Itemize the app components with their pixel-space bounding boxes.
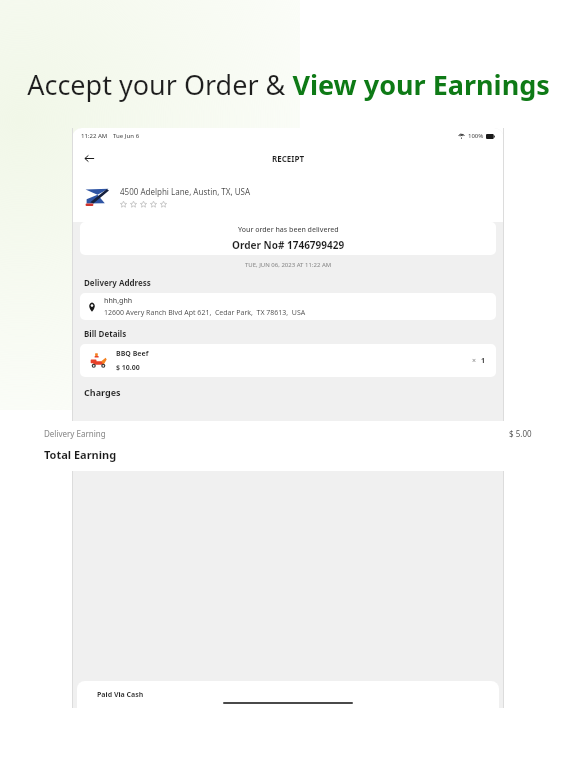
- staticText: RECEIPT: [272, 153, 305, 164]
- button[interactable]: hhh,ghh: [80, 293, 496, 320]
- staticText: 1: [481, 356, 486, 366]
- staticText: 11:22 AM: [81, 132, 108, 140]
- staticText: $ 5.00: [509, 428, 532, 439]
- staticText: TUE, JUN 06, 2023 AT 11:22 AM: [245, 261, 332, 269]
- staticText: hhh,ghh: [104, 296, 133, 306]
- staticText: Order No# 1746799429: [232, 238, 345, 252]
- staticText: Accept your Order & View your Earnings: [27, 66, 550, 103]
- staticText: 12600 Avery Ranch Blvd Apt 621, Cedar Pa…: [104, 308, 306, 318]
- staticText: Charges: [84, 386, 121, 398]
- staticText: 100%: [468, 132, 484, 140]
- button[interactable]: Paid Via Cash: [77, 681, 499, 708]
- button[interactable]: BBQ Beef: [80, 344, 496, 377]
- staticText: BBQ Beef: [116, 349, 149, 359]
- staticText: Tue Jun 6: [113, 132, 140, 140]
- staticText: 4500 Adelphi Lane, Austin, TX, USA: [120, 186, 251, 197]
- staticText: Delivery Earning: [44, 428, 106, 439]
- staticText: ×: [472, 356, 477, 366]
- staticText: Paid Via Cash: [97, 690, 144, 700]
- button[interactable]: Delivery Earning: [30, 421, 546, 471]
- staticText: Total Earning: [44, 447, 117, 462]
- staticText: $ 10.00: [116, 363, 140, 373]
- staticText: Delivery Address: [84, 277, 151, 288]
- staticText: Your order has been delivered: [238, 225, 339, 235]
- staticText: Bill Details: [84, 328, 127, 339]
- button[interactable]: Back: [79, 148, 99, 168]
